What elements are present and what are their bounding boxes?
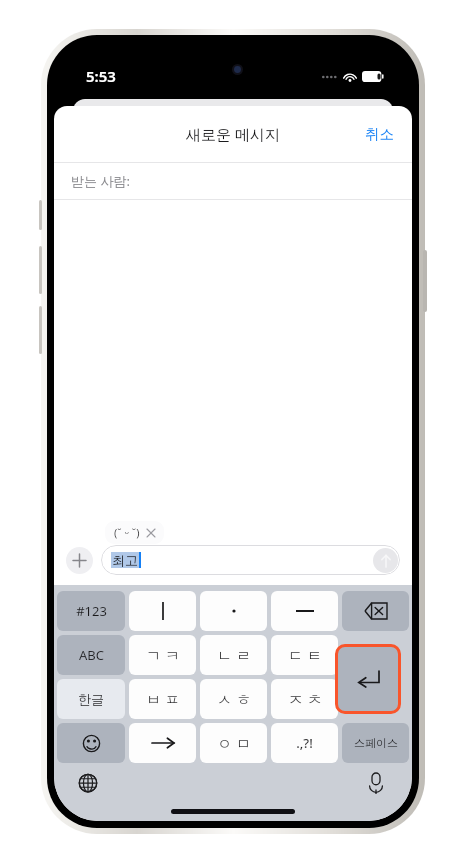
button[interactable]: Backspace (342, 591, 409, 631)
staticText: .,?! (296, 734, 313, 752)
button[interactable]: ㄴ ㄹ (200, 635, 267, 675)
button[interactable] (271, 591, 338, 631)
button[interactable]: Dictation (363, 770, 389, 796)
button[interactable]: Change keyboard (75, 770, 101, 796)
button[interactable]: ㄱ ㅋ (129, 635, 196, 675)
staticText: ㄴ ㄹ (217, 645, 251, 665)
staticText: 5:53 (86, 66, 116, 86)
button[interactable]: #123 (57, 591, 125, 631)
button[interactable]: 취소 (347, 115, 412, 153)
button[interactable]: 한글 (57, 679, 125, 719)
staticText: (˘ ᵕ ˘) (114, 525, 140, 540)
button[interactable]: (˘ ᵕ ˘) (105, 521, 164, 544)
staticText: ㅅ ㅎ (217, 689, 251, 709)
button[interactable]: Enter (335, 635, 401, 723)
staticText: ㅇ ㅁ (217, 733, 251, 753)
button[interactable] (200, 591, 267, 631)
button[interactable]: ㄷ ㅌ (271, 635, 338, 675)
staticText: 한글 (78, 691, 104, 707)
staticText: ㅂ ㅍ (146, 689, 180, 709)
staticText: ABC (79, 646, 104, 664)
staticText: 취소 (365, 125, 394, 143)
button[interactable]: 최고 (101, 545, 400, 575)
button[interactable] (129, 723, 196, 763)
button[interactable]: ㅂ ㅍ (129, 679, 196, 719)
button[interactable] (129, 591, 196, 631)
button[interactable]: ㅈ ㅊ (271, 679, 338, 719)
staticText: 새로운 메시지 (186, 124, 280, 144)
staticText: 스페이스 (354, 736, 398, 750)
button[interactable]: ㅇ ㅁ (200, 723, 267, 763)
button[interactable]: 스페이스 (342, 723, 409, 763)
button[interactable]: Send (373, 548, 398, 573)
staticText: ㅈ ㅊ (288, 689, 322, 709)
staticText: 받는 사람: (71, 172, 130, 190)
staticText: ㄷ ㅌ (288, 645, 322, 665)
button[interactable]: 받는 사람: (54, 163, 412, 199)
button[interactable]: ㅅ ㅎ (200, 679, 267, 719)
staticText: 최고 (112, 552, 138, 568)
button[interactable]: More options (66, 547, 93, 574)
button[interactable]: .,?! (271, 723, 338, 763)
button[interactable]: ABC (57, 635, 125, 675)
staticText: #123 (76, 602, 107, 620)
staticText: ㄱ ㅋ (146, 645, 180, 665)
button[interactable]: Emoji (57, 723, 125, 763)
